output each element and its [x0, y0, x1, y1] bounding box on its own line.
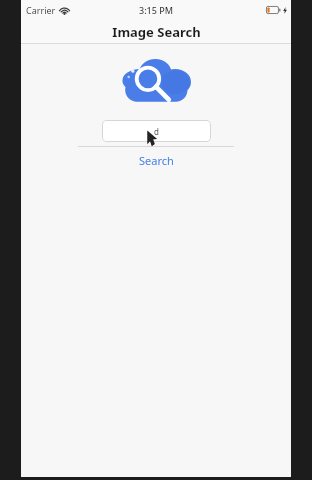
- staticText: Search: [139, 153, 174, 168]
- button[interactable]: d: [102, 120, 211, 142]
- button[interactable]: Search: [131, 151, 182, 170]
- other: Image search logo: [121, 59, 191, 104]
- staticText: 3:15 PM: [139, 4, 173, 16]
- staticText: Image Search: [112, 23, 201, 41]
- staticText: Carrier: [26, 4, 56, 16]
- staticText: d: [154, 126, 159, 137]
